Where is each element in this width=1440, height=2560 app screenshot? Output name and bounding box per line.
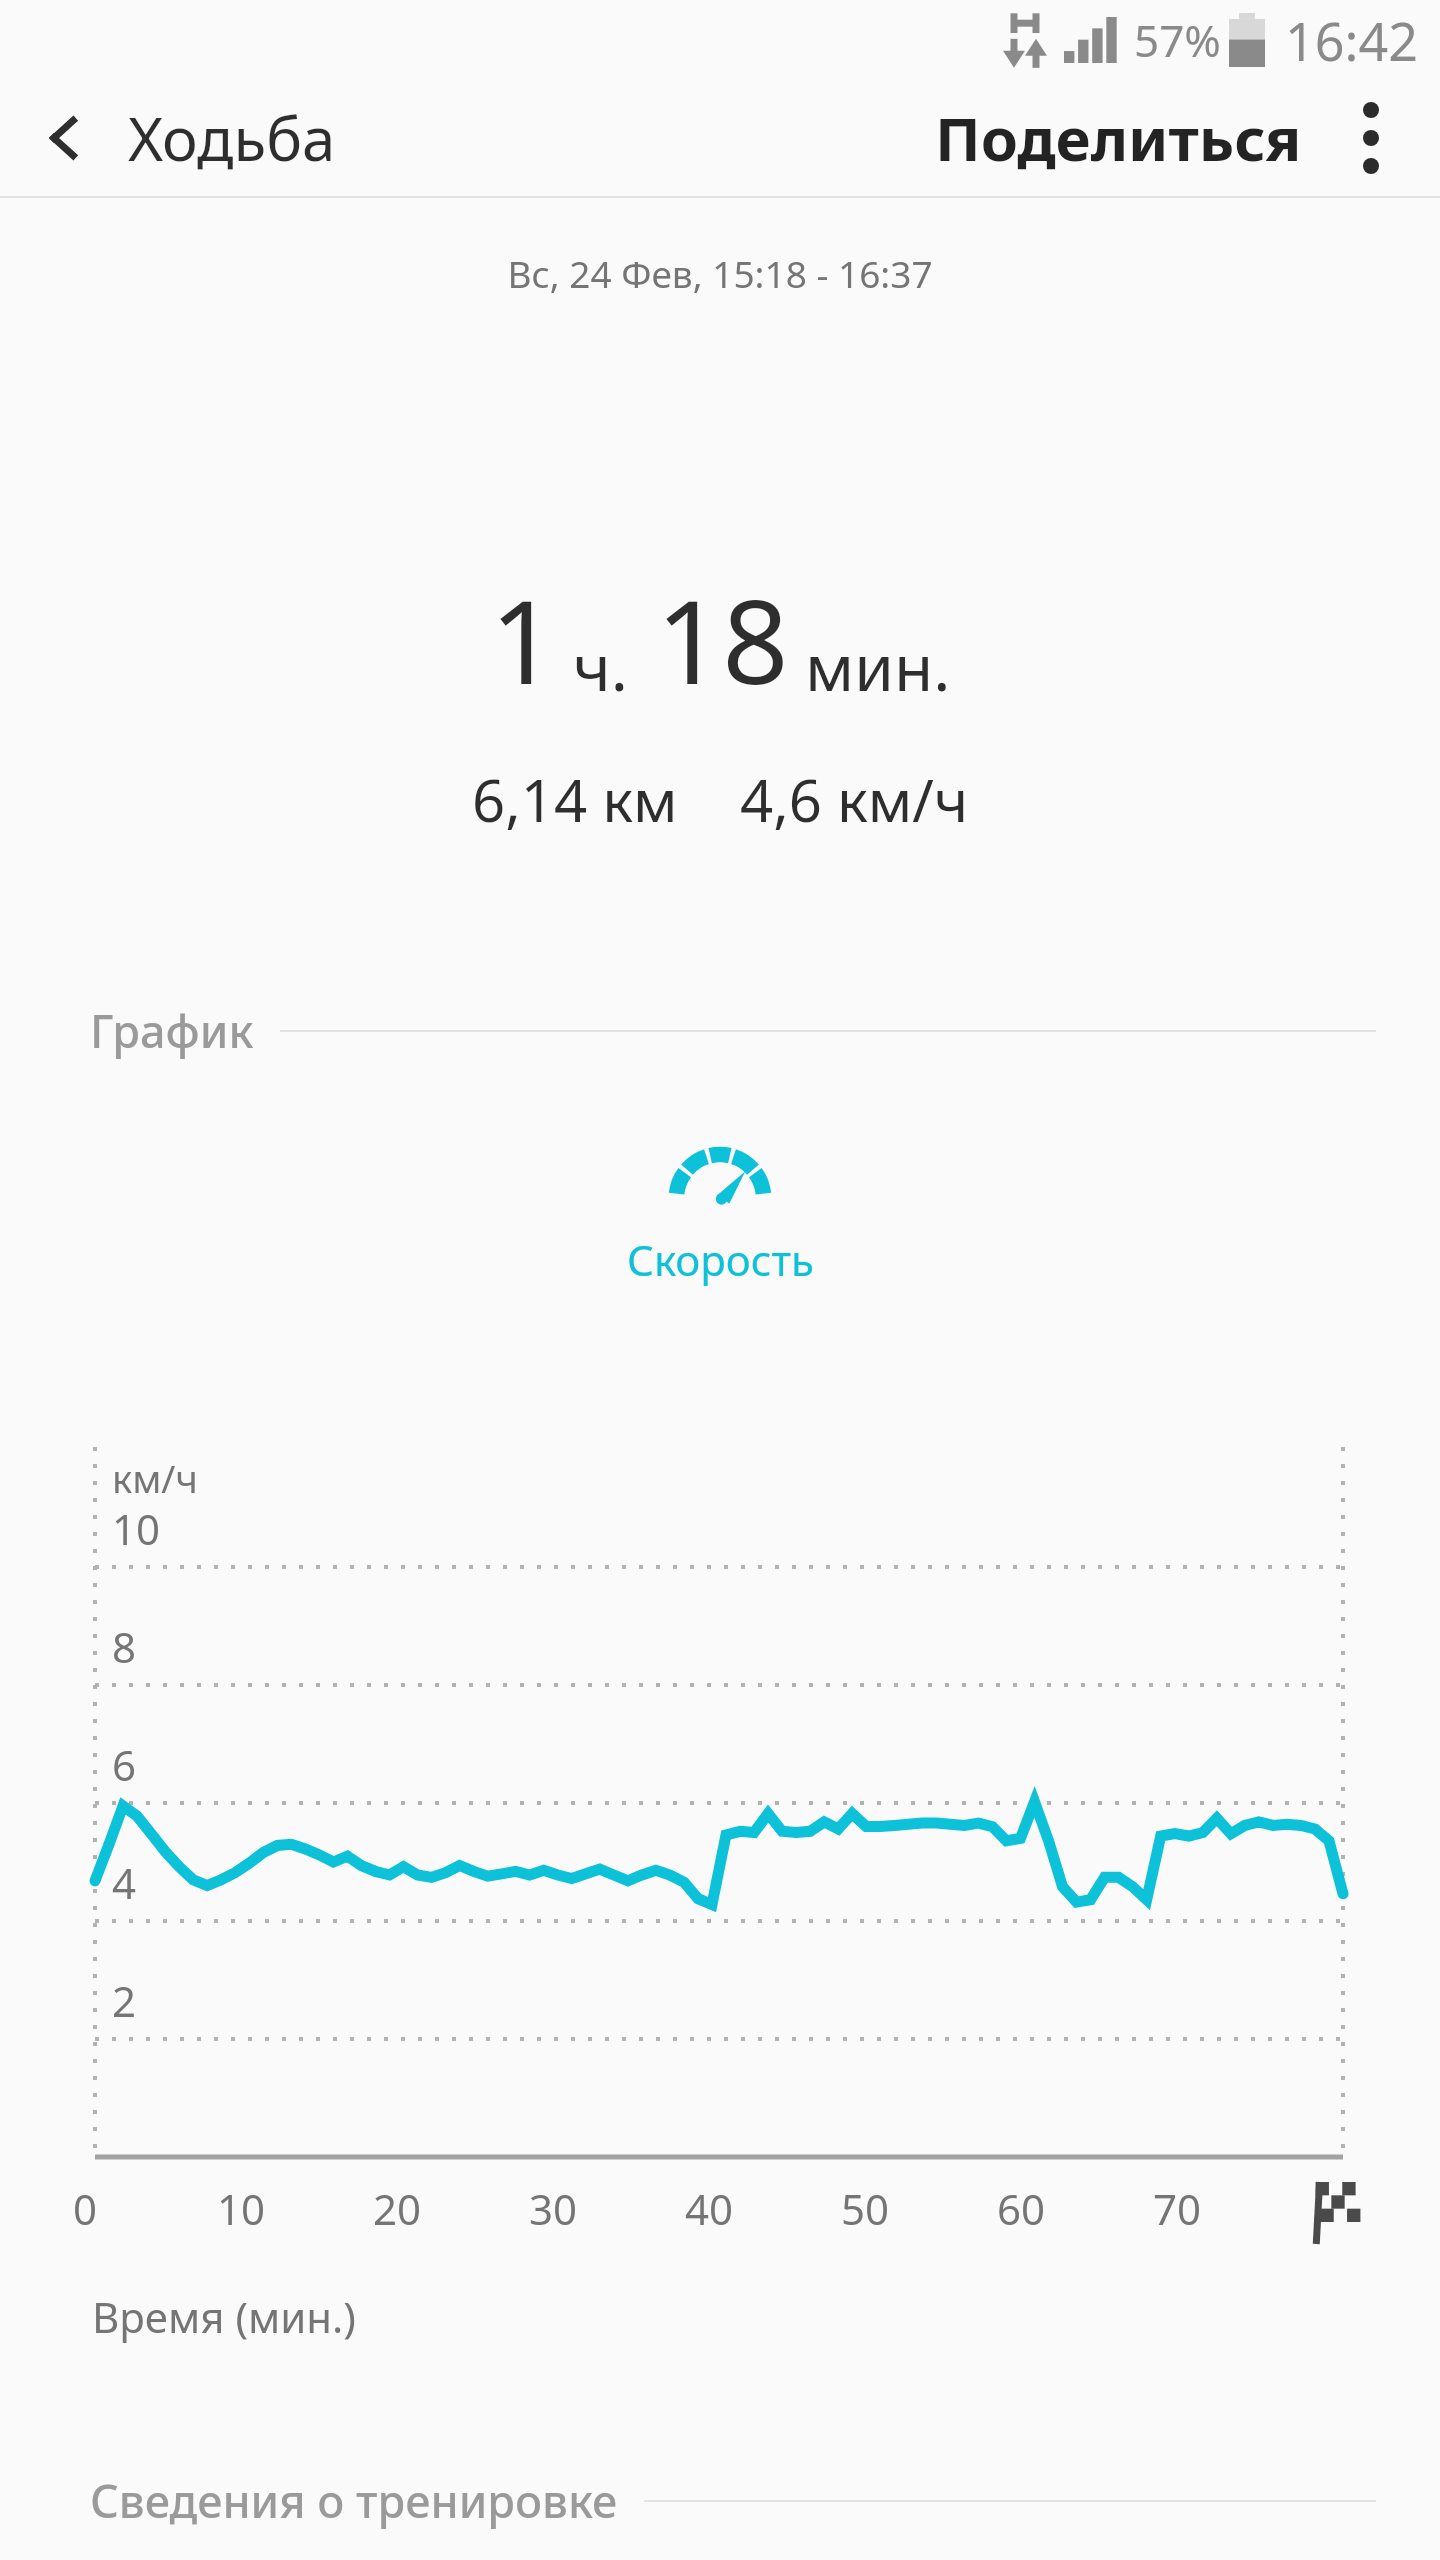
staticText: 18 bbox=[656, 560, 789, 718]
staticText: 4 bbox=[112, 1854, 137, 1911]
button[interactable]: Скорость bbox=[645, 1135, 795, 1225]
staticText: 0 bbox=[73, 2180, 98, 2237]
staticText: График bbox=[90, 1000, 254, 1061]
staticText: 4,6 км/ч bbox=[740, 760, 969, 839]
staticText: Скорость bbox=[627, 1231, 814, 1288]
staticText: 60 bbox=[997, 2180, 1046, 2237]
staticText: 6 bbox=[112, 1736, 137, 1793]
staticText: 10 bbox=[112, 1500, 161, 1557]
staticText: 10 bbox=[217, 2180, 266, 2237]
button[interactable]: Поделиться bbox=[935, 97, 1302, 179]
staticText: мин. bbox=[805, 623, 951, 710]
staticText: 57% bbox=[1134, 10, 1221, 70]
staticText: Сведения о тренировке bbox=[90, 2470, 618, 2531]
staticText: 20 bbox=[373, 2180, 422, 2237]
staticText: 40 bbox=[685, 2180, 734, 2237]
button[interactable]: More options bbox=[1302, 80, 1440, 196]
staticText: 6,14 км bbox=[472, 760, 678, 839]
staticText: 50 bbox=[841, 2180, 890, 2237]
staticText: ч. bbox=[573, 623, 628, 710]
staticText: 2 bbox=[112, 1972, 137, 2029]
button[interactable]: Ходьба bbox=[128, 97, 336, 179]
staticText: Вс, 24 Фев, 15:18 - 16:37 bbox=[0, 248, 1440, 298]
staticText: 70 bbox=[1153, 2180, 1202, 2237]
staticText: 8 bbox=[112, 1618, 137, 1675]
staticText: 30 bbox=[529, 2180, 578, 2237]
staticText: 1 bbox=[490, 560, 557, 718]
staticText: км/ч bbox=[112, 1452, 198, 1504]
button[interactable]: Back bbox=[0, 80, 128, 196]
staticText: 16:42 bbox=[1285, 5, 1418, 76]
staticText: Время (мин.) bbox=[92, 2288, 356, 2345]
